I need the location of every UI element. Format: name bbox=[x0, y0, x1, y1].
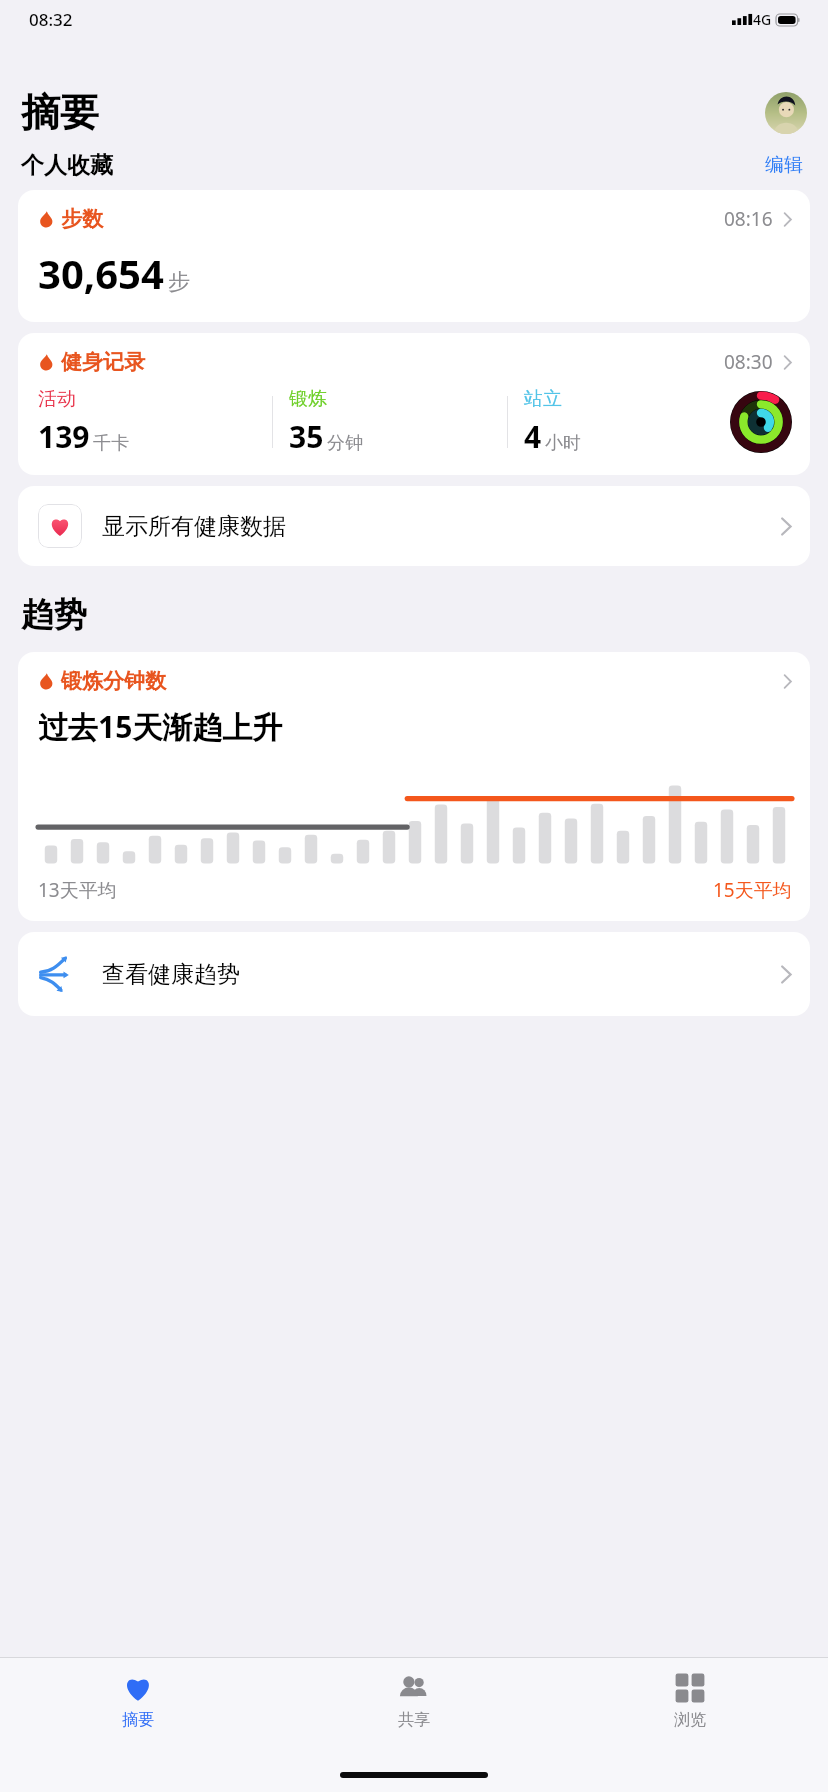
button[interactable]: 步数 bbox=[18, 190, 810, 322]
staticText: 35 bbox=[289, 416, 324, 457]
staticText: 查看健康趋势 bbox=[102, 960, 240, 989]
staticText: 08:30 bbox=[724, 349, 773, 375]
button[interactable]: 摘要 bbox=[0, 1658, 276, 1758]
staticText: 4G bbox=[753, 10, 772, 29]
staticText: 锻炼 bbox=[289, 387, 327, 411]
staticText: 健身记录 bbox=[61, 349, 145, 375]
staticText: 站立 bbox=[524, 387, 562, 411]
staticText: 活动 bbox=[38, 387, 76, 411]
button[interactable]: 编辑 bbox=[761, 149, 807, 181]
staticText: 锻炼分钟数 bbox=[61, 668, 166, 694]
button[interactable]: Profile bbox=[765, 92, 807, 134]
button[interactable]: 查看健康趋势 bbox=[18, 932, 810, 1016]
staticText: 共享 bbox=[398, 1710, 430, 1730]
staticText: 分钟 bbox=[327, 432, 363, 455]
staticText: 编辑 bbox=[765, 153, 803, 177]
staticText: 08:16 bbox=[724, 206, 773, 232]
button[interactable]: 共享 bbox=[276, 1658, 552, 1758]
staticText: 显示所有健康数据 bbox=[102, 512, 286, 541]
staticText: 4 bbox=[524, 416, 542, 457]
staticText: 千卡 bbox=[93, 432, 129, 455]
staticText: 139 bbox=[38, 416, 90, 457]
staticText: 摘要 bbox=[122, 1710, 154, 1730]
staticText: 浏览 bbox=[674, 1710, 706, 1730]
staticText: 过去15天渐趋上升 bbox=[38, 706, 283, 747]
staticText: 趋势 bbox=[21, 594, 87, 636]
button[interactable]: 锻炼分钟数 bbox=[18, 652, 810, 921]
staticText: 小时 bbox=[545, 432, 581, 455]
staticText: 15天平均 bbox=[713, 877, 792, 903]
staticText: 08:32 bbox=[29, 8, 73, 31]
button[interactable]: 浏览 bbox=[552, 1658, 828, 1758]
staticText: 步数 bbox=[61, 206, 103, 232]
staticText: 个人收藏 bbox=[21, 151, 113, 180]
staticText: 步 bbox=[168, 268, 190, 296]
staticText: 摘要 bbox=[21, 88, 99, 137]
staticText: 30,654 bbox=[38, 246, 164, 300]
staticText: 13天平均 bbox=[38, 877, 117, 903]
button[interactable]: 健身记录 bbox=[18, 333, 810, 475]
button[interactable]: 显示所有健康数据 bbox=[18, 486, 810, 566]
